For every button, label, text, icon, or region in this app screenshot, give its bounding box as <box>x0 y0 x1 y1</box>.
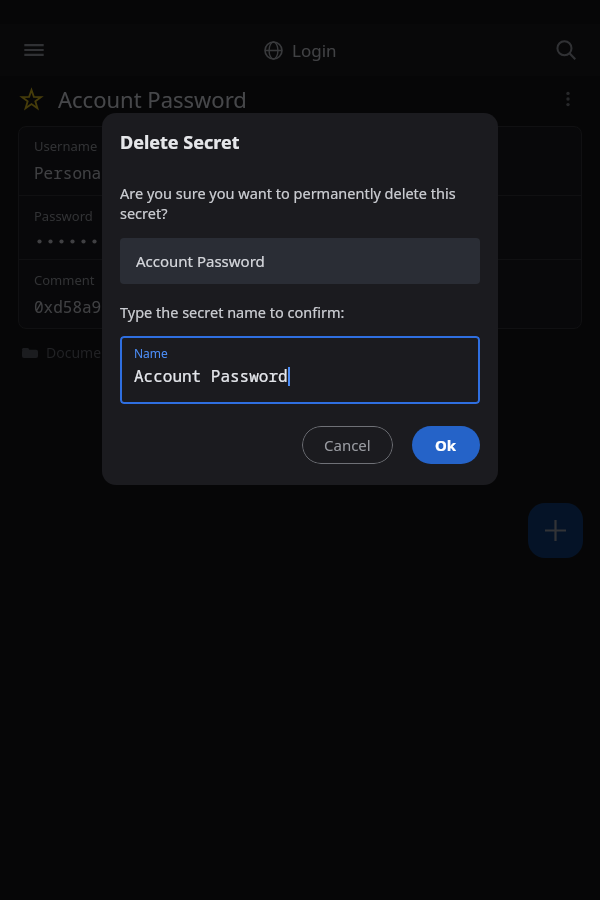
button[interactable]: Favorite <box>14 82 48 116</box>
staticText: Documents <box>46 343 122 362</box>
button[interactable]: Menu <box>14 30 54 70</box>
button[interactable]: Password <box>18 196 582 259</box>
staticText: Password <box>34 207 93 225</box>
button[interactable]: Name <box>120 336 480 404</box>
button[interactable]: Add <box>528 503 583 558</box>
button[interactable]: Username <box>18 126 582 195</box>
staticText: Login <box>292 39 337 62</box>
button[interactable]: Cancel <box>302 426 393 464</box>
button[interactable]: Account Password <box>120 238 480 284</box>
staticText: Type the secret name to confirm: <box>120 302 345 322</box>
staticText: Username <box>34 137 98 155</box>
staticText: Account Password <box>134 365 288 387</box>
staticText: Account Password <box>136 251 265 271</box>
button[interactable]: Documents <box>18 339 126 366</box>
staticText: Ok <box>435 435 457 455</box>
button[interactable]: Comment <box>18 260 582 329</box>
button[interactable]: Login <box>258 35 343 66</box>
staticText: Account Password <box>58 84 247 114</box>
button[interactable]: Search <box>546 30 586 70</box>
staticText: Personal Account <box>34 162 188 184</box>
button[interactable]: More options <box>550 81 586 117</box>
staticText: Name <box>134 345 168 361</box>
staticText: 0xd58a98f3c2b1 <box>34 296 169 318</box>
button[interactable]: Ok <box>412 426 480 464</box>
staticText: Delete Secret <box>120 130 240 155</box>
staticText: Are you sure you want to permanently del… <box>120 183 480 223</box>
staticText: Cancel <box>324 435 371 455</box>
staticText: Comment <box>34 271 95 289</box>
